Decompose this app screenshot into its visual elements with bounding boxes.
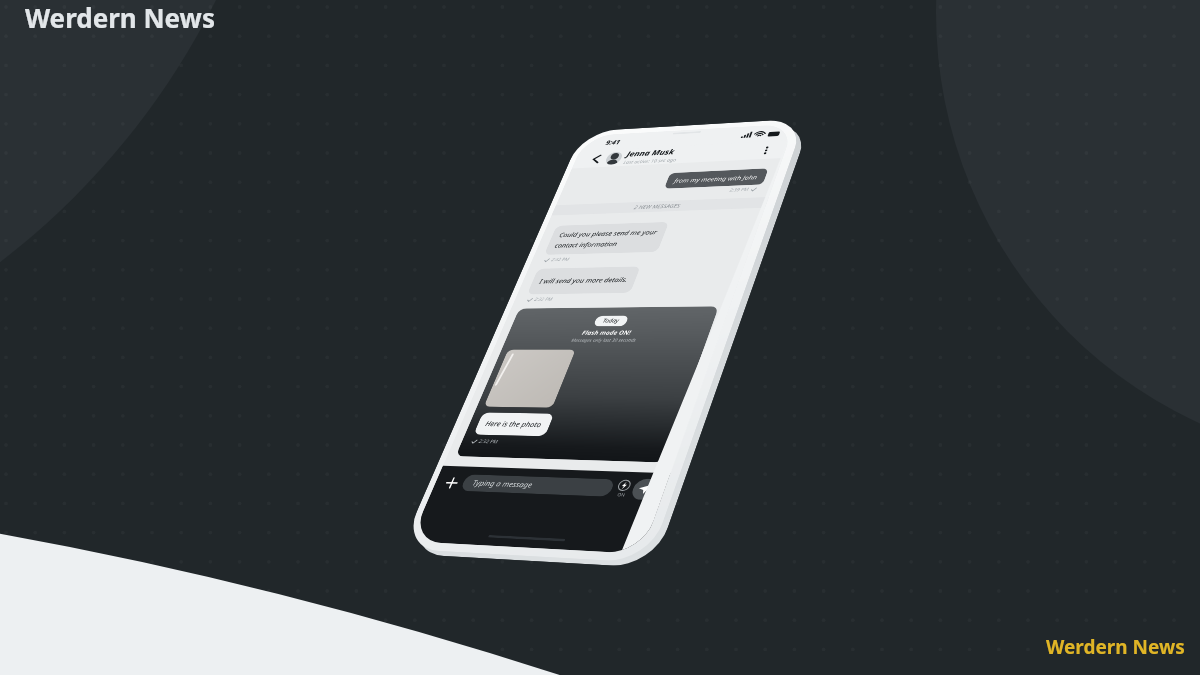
staticText: Could you please send me your contact in…: [554, 228, 659, 249]
staticText: 2:32 PM: [478, 438, 499, 445]
staticText: Werdern News: [25, 0, 215, 35]
staticText: 2:39 PM: [729, 186, 750, 193]
staticText: Today: [601, 317, 621, 325]
staticText: ON: [616, 492, 626, 498]
staticText: 2:32 PM: [550, 256, 571, 263]
staticText: Flash mode ON!: [507, 328, 711, 337]
button[interactable]: from my meeting with John: [664, 168, 769, 189]
staticText: 2:32 PM: [533, 296, 554, 302]
button[interactable]: Flash mode: [616, 479, 632, 491]
button[interactable]: I will send you more details.: [527, 266, 641, 294]
staticText: 2 NEW MESSAGES: [633, 202, 682, 211]
staticText: Jenna Musk: [625, 147, 676, 159]
button[interactable]: Send: [629, 478, 660, 500]
button[interactable]: Could you please send me your contact in…: [544, 222, 669, 255]
staticText: Werdern News: [1046, 634, 1185, 660]
button[interactable]: More options: [757, 144, 775, 156]
staticText: from my meeting with John: [673, 173, 759, 184]
button[interactable]: Back: [587, 153, 605, 164]
button[interactable]: Typing a message: [460, 474, 616, 497]
staticText: 9:41: [605, 137, 622, 146]
button[interactable]: Here is the photo: [473, 412, 554, 436]
button[interactable]: Add attachment: [441, 475, 462, 490]
staticText: I will send you more details.: [538, 275, 630, 286]
staticText: Here is the photo: [484, 419, 544, 430]
staticText: Last active: 10 sec ago: [622, 157, 678, 165]
staticText: Typing a message: [471, 478, 535, 490]
staticText: Messages only last 30 seconds: [504, 337, 708, 343]
